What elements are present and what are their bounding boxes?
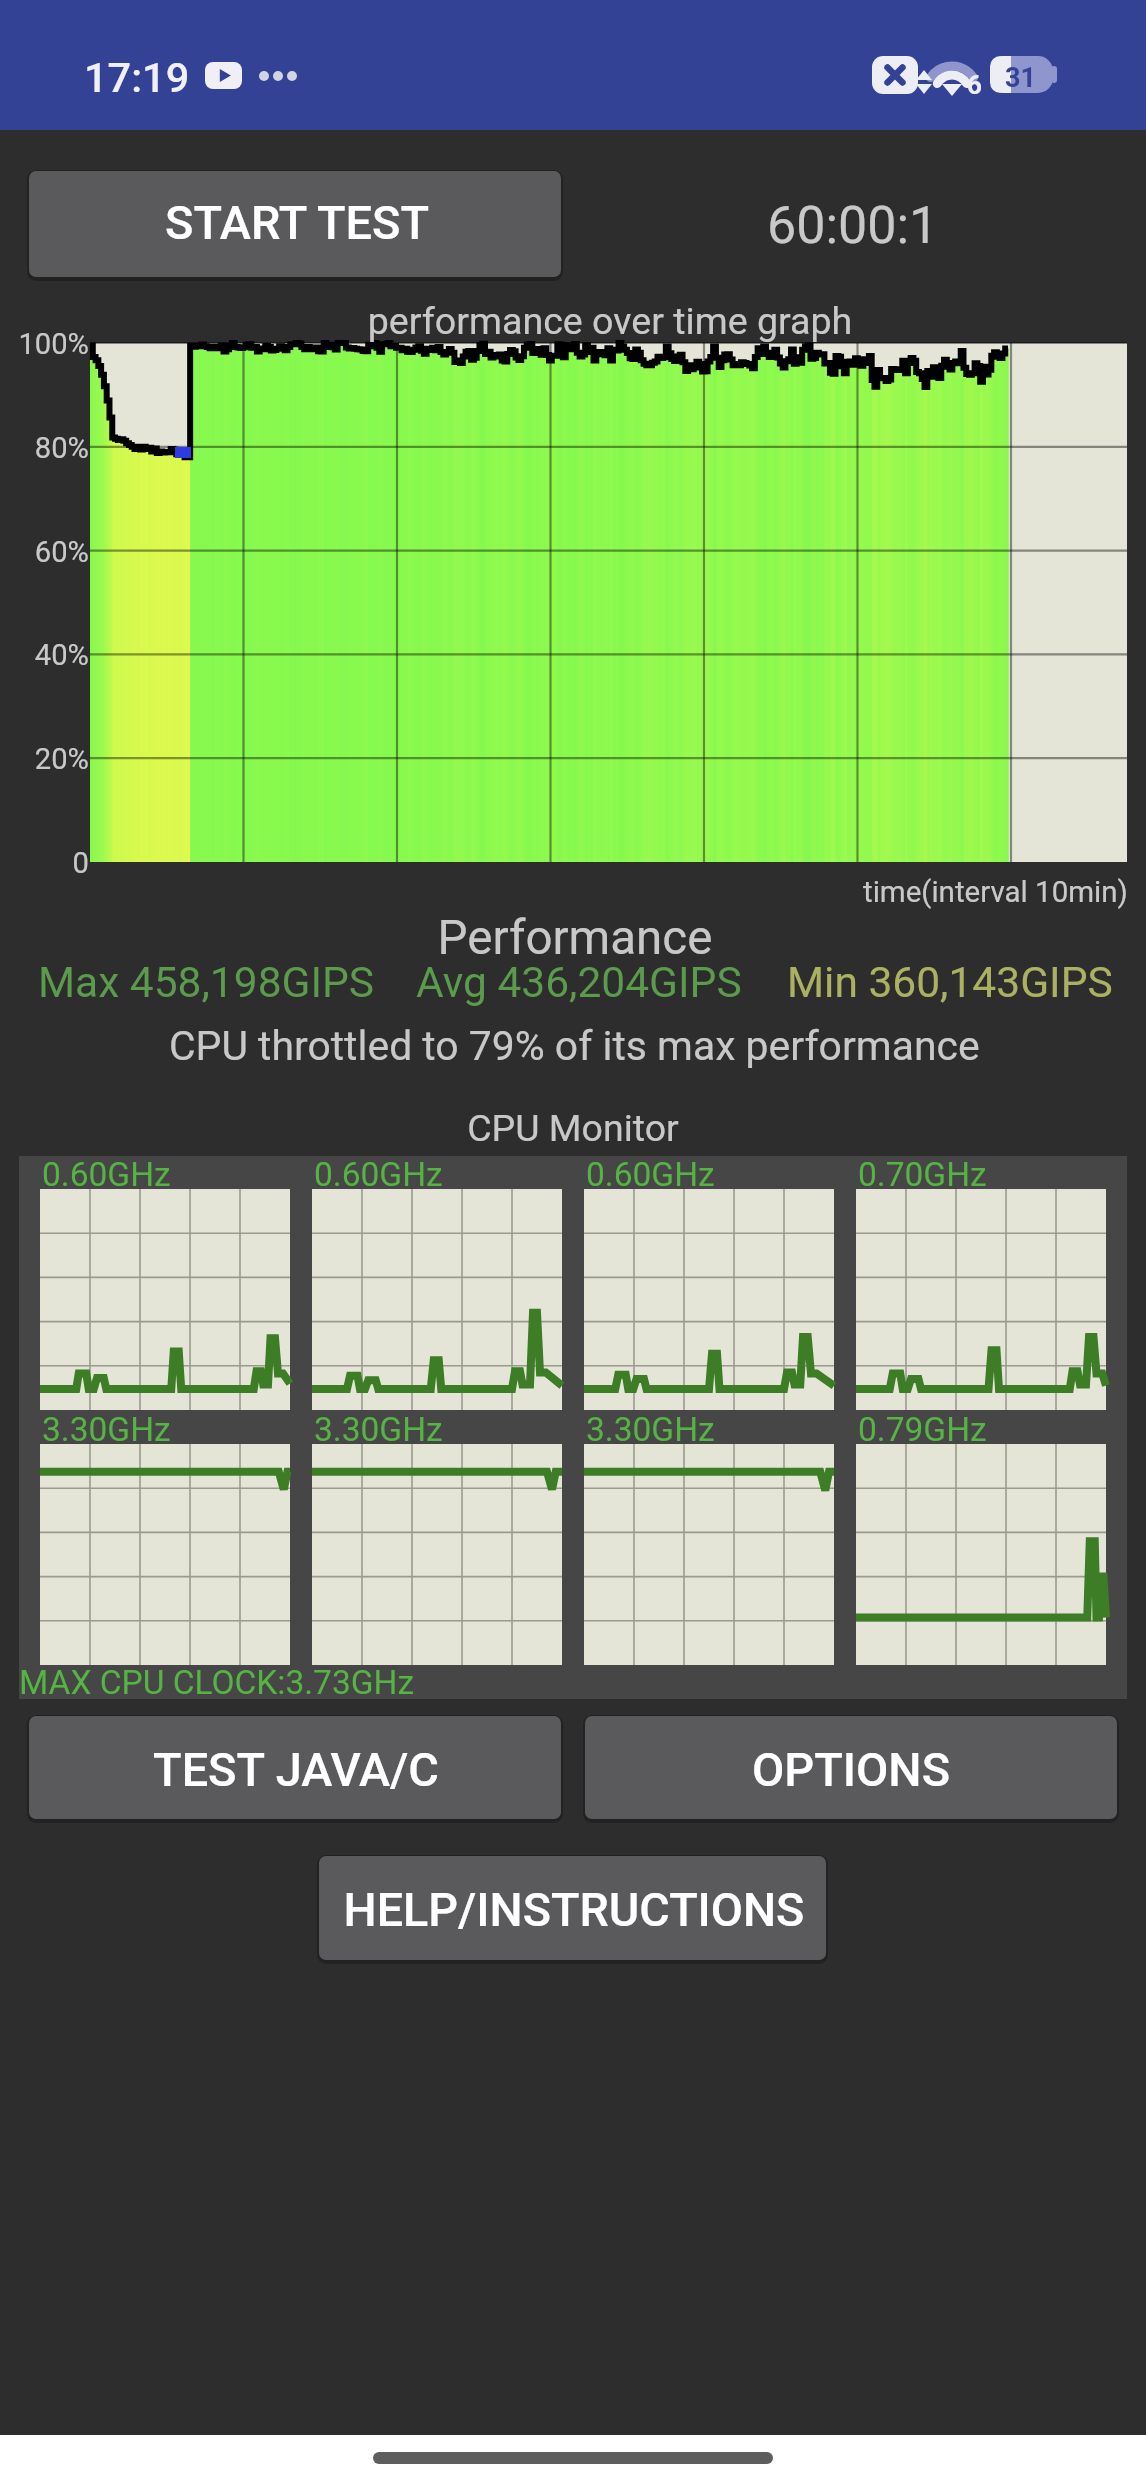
button[interactable]: HELP/INSTRUCTIONS [319,1856,826,1960]
staticText: 3.30GHz [314,1410,443,1449]
staticText: 100% [0,327,89,369]
staticText: Avg 436,204GIPS [416,958,742,1008]
staticText: 3.30GHz [586,1410,715,1449]
staticText: 0.79GHz [858,1410,987,1449]
staticText: 40% [0,638,89,680]
staticText: 31 [1005,62,1036,94]
staticText: CPU throttled to 79% of its max performa… [169,1022,980,1070]
staticText: 3.30GHz [42,1410,171,1449]
staticText: 60:00:1 [767,195,939,256]
staticText: 0.60GHz [42,1155,171,1194]
staticText: MAX CPU CLOCK:3.73GHz [19,1663,415,1702]
staticText: 20% [0,742,89,784]
button[interactable]: OPTIONS [585,1716,1117,1819]
staticText: 60% [0,535,89,577]
staticText: CPU Monitor [323,1106,823,1159]
staticText: 80% [0,431,89,473]
staticText: 6 [967,70,982,100]
button[interactable]: START TEST [29,171,561,277]
staticText: 0.70GHz [858,1155,987,1194]
staticText: Min 360,143GIPS [787,958,1113,1008]
staticText: 0.60GHz [314,1155,443,1194]
staticText: HELP/INSTRUCTIONS [294,1883,854,1948]
staticText: TEST JAVA/C [46,1742,546,1808]
staticText: Max 458,198GIPS [38,958,375,1008]
staticText: OPTIONS [601,1742,1101,1808]
staticText: 0.60GHz [586,1155,715,1194]
staticText: 0 [0,846,89,888]
button[interactable]: TEST JAVA/C [29,1716,561,1819]
staticText: 17:19 [84,53,190,102]
staticText: time(interval 10min) [863,875,1128,910]
staticText: Performance [275,910,875,977]
staticText: START TEST [47,195,547,261]
staticText: performance over time graph [260,299,960,352]
